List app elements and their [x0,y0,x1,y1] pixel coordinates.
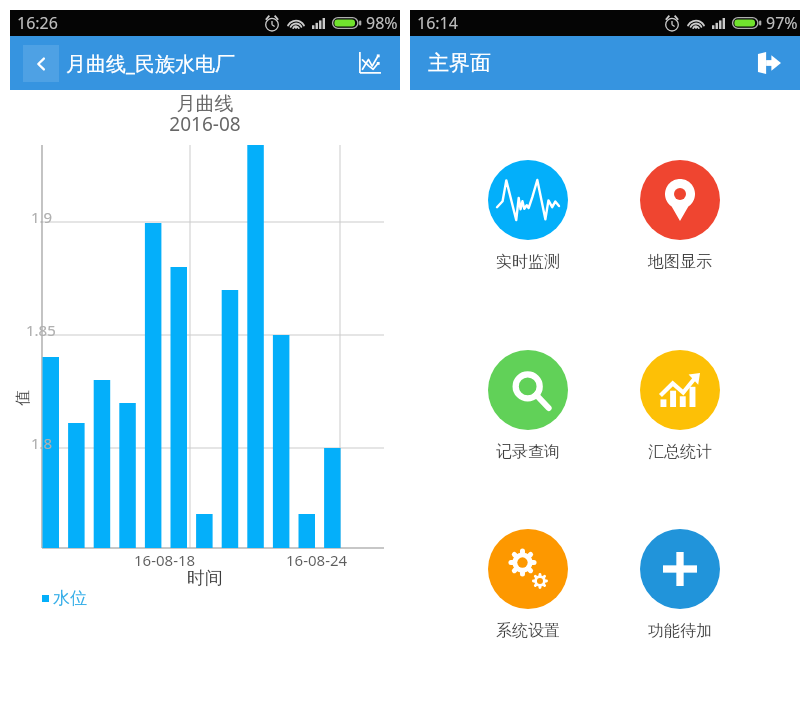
staticText: 汇总统计 [648,442,712,462]
staticText: 功能待加 [648,621,712,641]
staticText: 16:14 [417,12,458,34]
staticText: 月曲线_民族水电厂 [66,50,235,77]
staticText: 98% [366,12,398,34]
staticText: 1.85 [26,320,56,340]
staticText: 记录查询 [496,442,560,462]
staticText: 地图显示 [648,252,712,272]
button[interactable]: Back [23,45,59,82]
button[interactable]: 汇总统计 [615,350,745,462]
staticText: 2016-08 [10,111,400,137]
staticText: 水位 [53,588,87,609]
button[interactable]: 记录查询 [463,350,593,462]
staticText: 系统设置 [496,621,560,641]
staticText: 1.9 [31,207,53,227]
staticText: 时间 [10,567,400,590]
staticText: 月曲线 [10,92,400,116]
button[interactable]: Chart [352,46,386,80]
staticText: 97% [766,12,798,34]
staticText: 1.8 [31,433,53,453]
staticText: 16-08-18 [134,550,196,570]
button[interactable]: 系统设置 [463,529,593,641]
staticText: 16-08-24 [286,550,348,570]
staticText: 值 [13,390,33,406]
button[interactable]: 实时监测 [463,160,593,272]
staticText: 实时监测 [496,252,560,272]
staticText: 主界面 [428,50,491,76]
button[interactable]: 功能待加 [615,529,745,641]
button[interactable]: Logout [752,46,786,80]
button[interactable]: 地图显示 [615,160,745,272]
staticText: 16:26 [17,12,58,34]
button[interactable]: 水位 [42,588,87,609]
